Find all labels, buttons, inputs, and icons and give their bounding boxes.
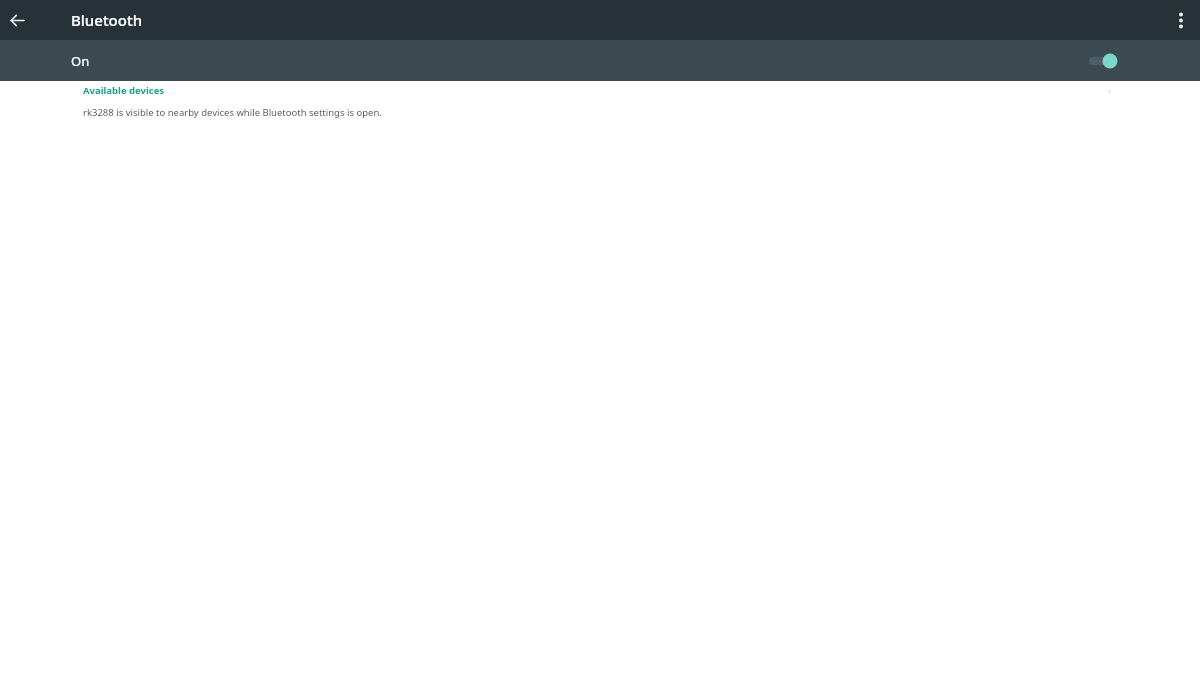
button[interactable]: On (0, 40, 1200, 81)
staticText: On (71, 52, 90, 70)
button[interactable]: More options (1162, 0, 1200, 40)
staticText: Available devices (83, 84, 165, 97)
button[interactable]: Back (0, 0, 34, 40)
staticText: rk3288 is visible to nearby devices whil… (83, 106, 382, 119)
staticText: Bluetooth (71, 10, 143, 30)
